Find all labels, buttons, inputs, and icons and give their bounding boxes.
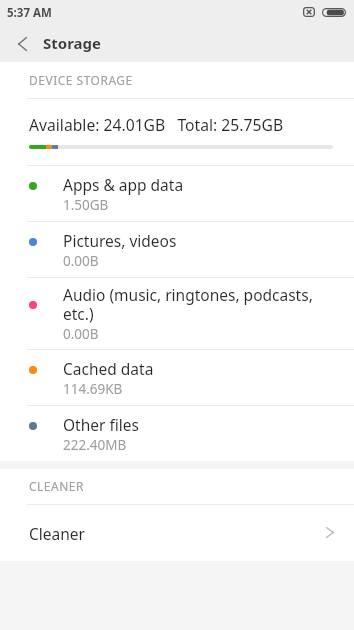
staticText: Cleaner xyxy=(29,523,85,544)
button[interactable]: Cleaner xyxy=(0,505,354,561)
button[interactable]: Audio (music, ringtones, podcasts, etc.) xyxy=(0,278,354,349)
staticText: Storage xyxy=(43,33,101,53)
button[interactable]: Other files xyxy=(0,406,354,461)
staticText: CLEANER xyxy=(29,478,84,494)
staticText: 0.00B xyxy=(63,252,99,270)
staticText: 0.00B xyxy=(63,325,99,343)
staticText: Audio (music, ringtones, podcasts, etc.) xyxy=(63,286,330,324)
staticText: 114.69KB xyxy=(63,380,123,398)
button[interactable]: Cached data xyxy=(0,350,354,405)
staticText: Cached data xyxy=(63,360,154,379)
staticText: Available: 24.01GB Total: 25.75GB xyxy=(29,114,284,135)
staticText: Apps & app data xyxy=(63,176,184,195)
staticText: 1.50GB xyxy=(63,196,109,214)
button[interactable]: Apps & app data xyxy=(0,166,354,221)
staticText: Other files xyxy=(63,416,139,435)
other: Open Cleaner xyxy=(326,527,334,538)
button[interactable]: Pictures, videos xyxy=(0,222,354,277)
staticText: Pictures, videos xyxy=(63,232,177,251)
staticText: 5:37 AM xyxy=(7,5,52,21)
staticText: DEVICE STORAGE xyxy=(29,72,133,88)
button[interactable]: Back xyxy=(6,28,38,60)
staticText: 222.40MB xyxy=(63,436,127,454)
